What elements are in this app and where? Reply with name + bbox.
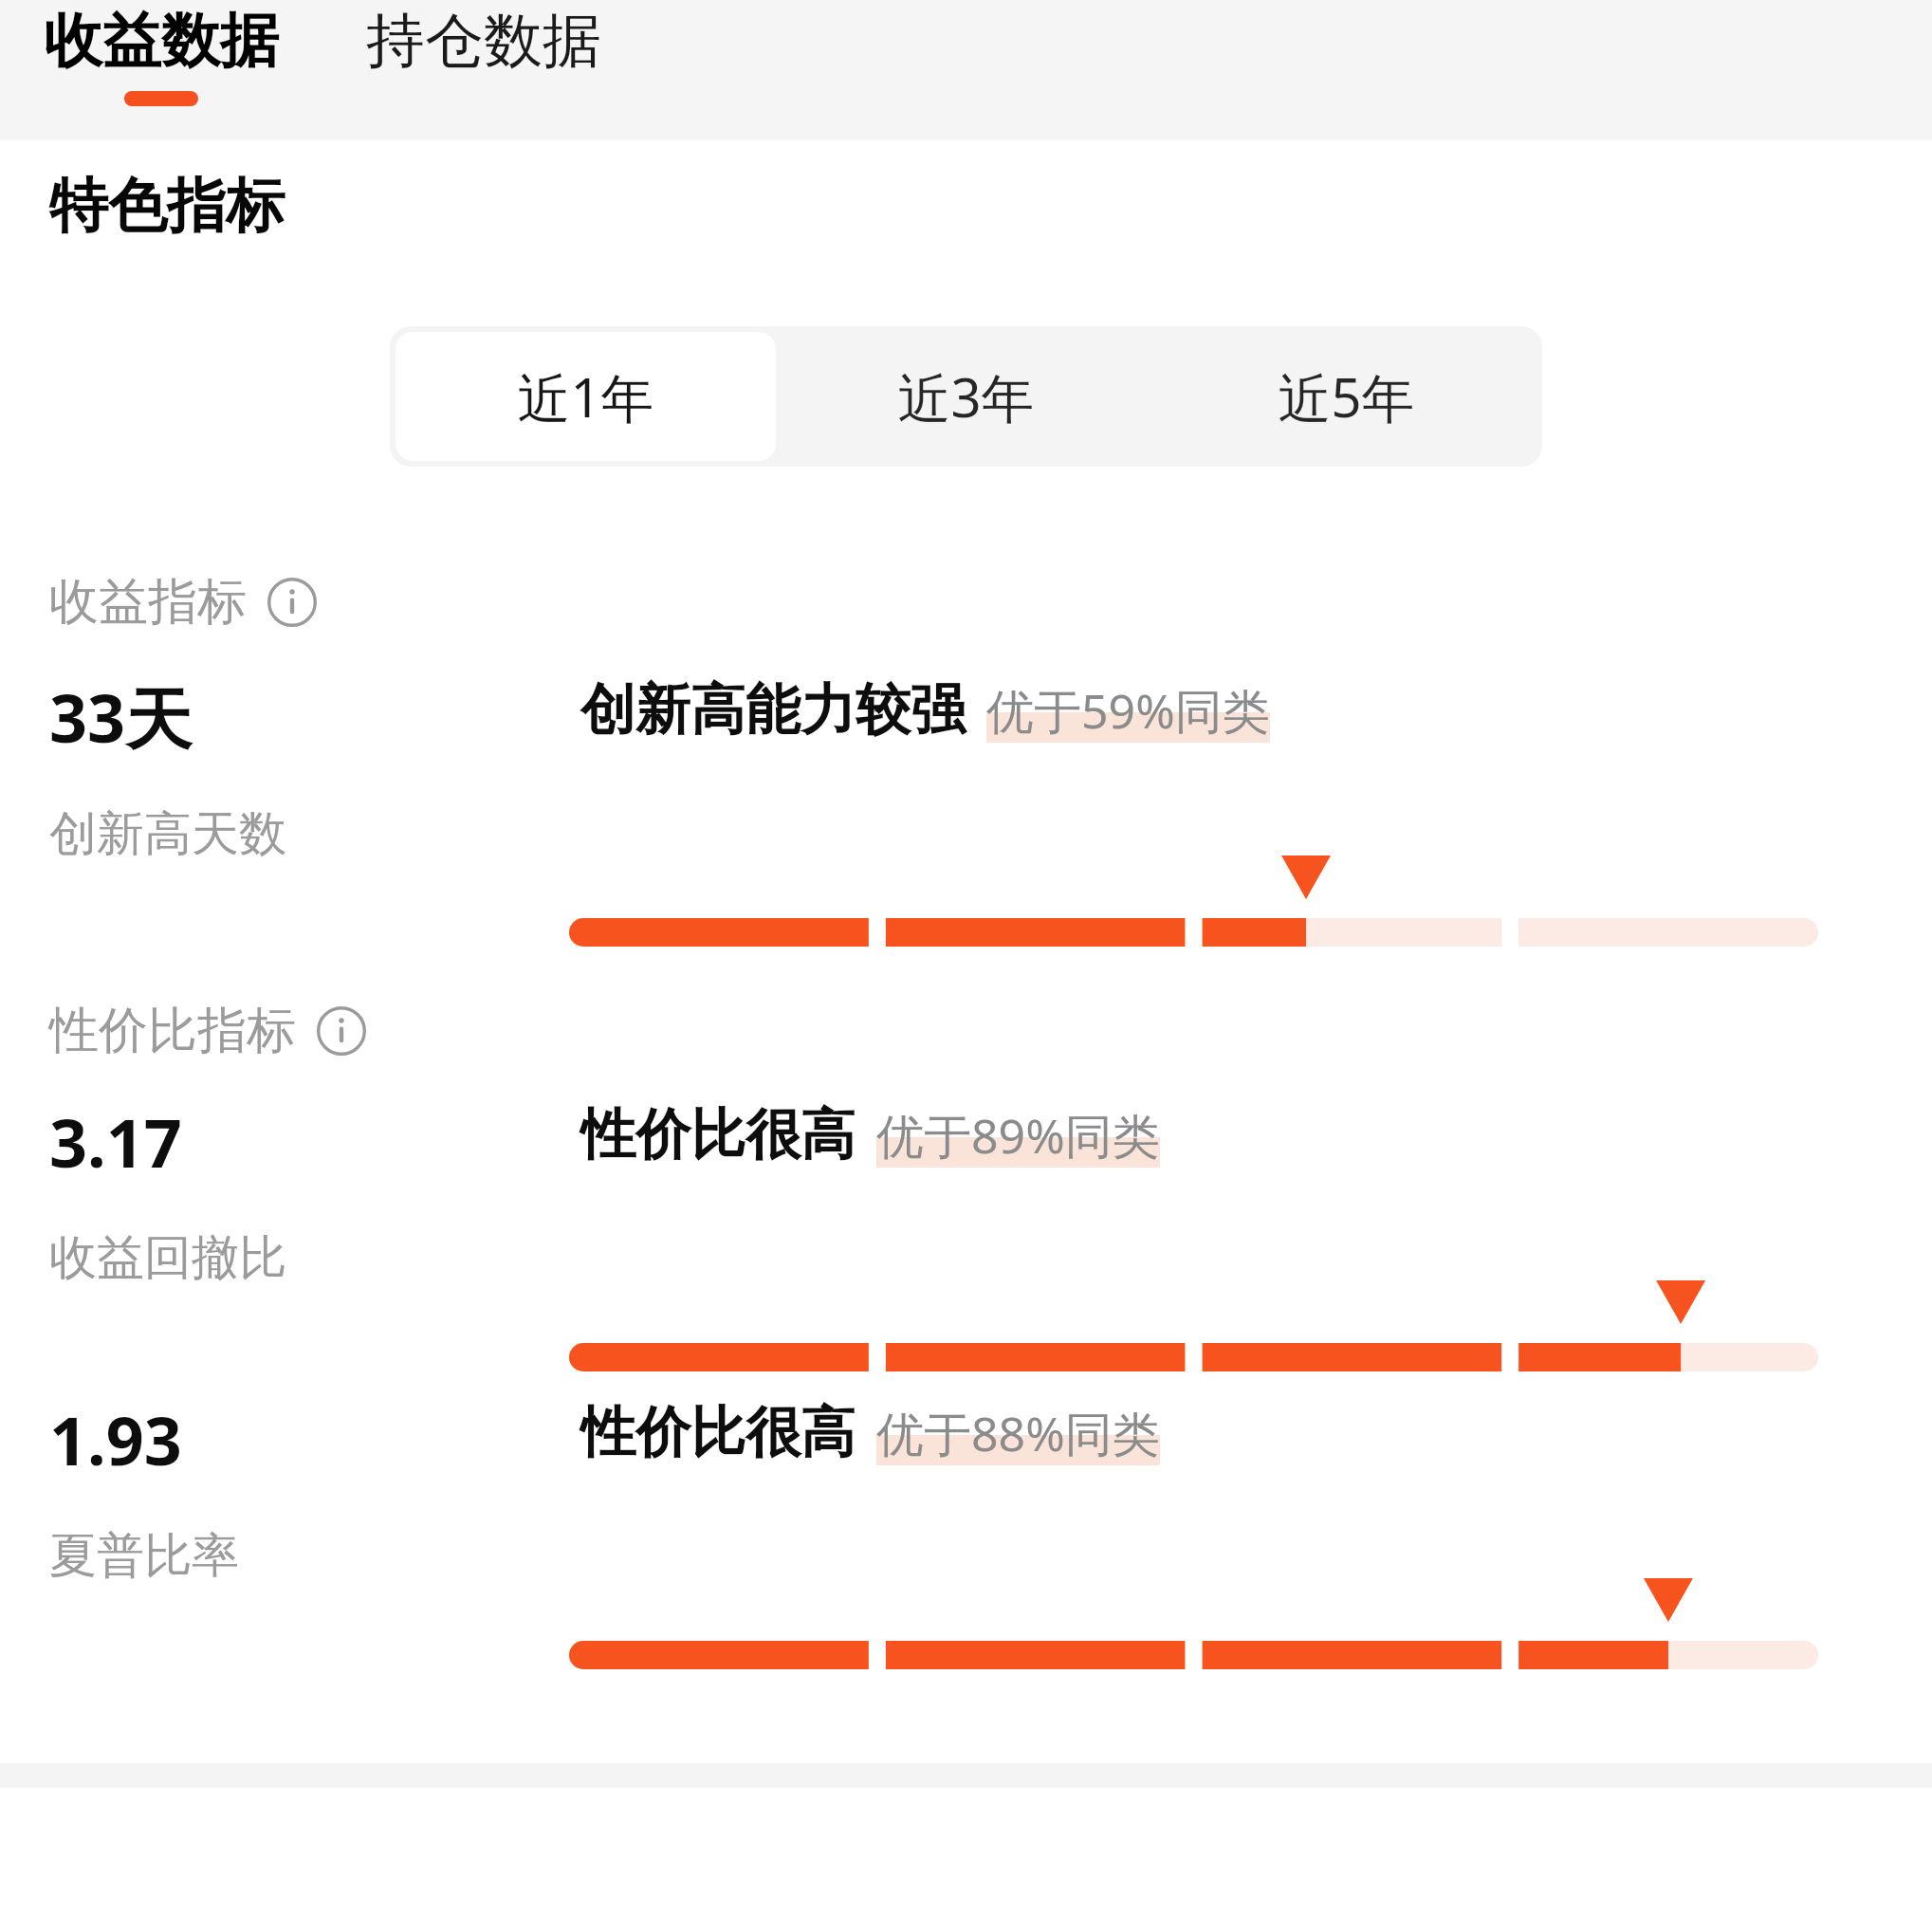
staticText: 性价比很高 [580, 1398, 856, 1467]
staticText: 1.93 [49, 1394, 182, 1484]
staticText: 优于88%同类 [876, 1401, 1160, 1465]
button[interactable]: 近1年 [396, 332, 776, 461]
staticText: 创新高天数 [49, 804, 286, 864]
staticText: 性价比指标 [49, 1000, 296, 1062]
staticText: 优于59%同类 [986, 678, 1270, 743]
staticText: 近1年 [517, 360, 654, 432]
staticText: 3.17 [49, 1096, 182, 1187]
staticText: 优于89%同类 [876, 1103, 1160, 1168]
staticText: 夏普比率 [49, 1526, 239, 1586]
button[interactable]: 持仓数据 [322, 0, 645, 140]
other: 指标说明 [317, 1006, 366, 1056]
button[interactable]: 收益数据 [0, 0, 322, 140]
staticText: 近3年 [897, 360, 1035, 432]
staticText: 持仓数据 [366, 4, 601, 78]
button[interactable]: 收益指标 [49, 571, 317, 634]
staticText: 33天 [49, 672, 193, 763]
staticText: 收益回撤比 [49, 1228, 286, 1288]
button[interactable]: 性价比指标 [49, 1000, 366, 1062]
staticText: 近5年 [1278, 360, 1415, 432]
staticText: 创新高能力较强 [580, 675, 966, 745]
staticText: 特色指标 [49, 169, 285, 243]
staticText: 收益指标 [49, 571, 247, 634]
staticText: 收益数据 [44, 4, 279, 78]
staticText: 性价比很高 [580, 1100, 856, 1169]
other: 指标说明 [267, 578, 317, 627]
button[interactable]: 近5年 [1156, 332, 1536, 461]
button[interactable]: 近3年 [776, 332, 1156, 461]
